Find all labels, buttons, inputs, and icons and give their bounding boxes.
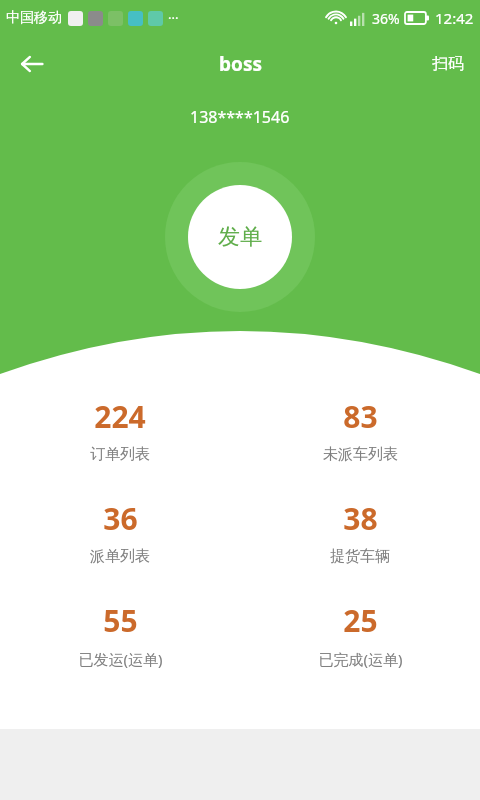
button[interactable]: 224 [0, 392, 240, 468]
staticText: 派单列表 [90, 547, 150, 566]
button[interactable]: 扫码 [416, 38, 480, 90]
staticText: 中国移动 [6, 9, 62, 27]
button[interactable]: 25 [240, 596, 480, 673]
staticText: 已发运(运单) [78, 649, 163, 669]
staticText: 未派车列表 [323, 445, 398, 464]
button[interactable]: 38 [240, 494, 480, 570]
staticText: 224 [94, 396, 146, 437]
staticText: 138****1546 [190, 106, 290, 128]
staticText: 55 [103, 600, 138, 641]
staticText: 25 [343, 600, 378, 641]
staticText: ··· [168, 9, 179, 27]
staticText: 扫码 [432, 54, 464, 74]
button[interactable]: 55 [0, 596, 240, 673]
staticText: 已完成(运单) [318, 649, 403, 669]
staticText: 83 [343, 396, 378, 437]
staticText: 12:42 [435, 8, 474, 28]
button[interactable]: Back [0, 38, 64, 90]
staticText: 36 [103, 498, 138, 539]
staticText: 提货车辆 [330, 547, 390, 566]
staticText: 38 [343, 498, 378, 539]
button[interactable]: 发单 [188, 185, 292, 289]
button[interactable]: 36 [0, 494, 240, 570]
staticText: 订单列表 [90, 445, 150, 464]
staticText: boss [219, 51, 262, 77]
staticText: 36% [372, 9, 400, 28]
button[interactable]: 83 [240, 392, 480, 468]
staticText: 发单 [218, 223, 262, 251]
